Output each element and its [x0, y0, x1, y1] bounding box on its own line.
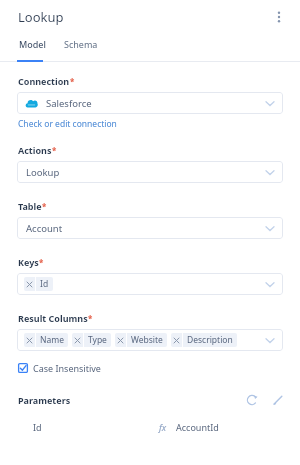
staticText: Id: [40, 278, 49, 290]
button[interactable]: More options: [266, 4, 292, 30]
staticText: *: [39, 257, 44, 268]
staticText: Model: [19, 38, 46, 50]
staticText: Description: [187, 334, 233, 346]
staticText: AccountId: [176, 421, 219, 433]
staticText: *: [70, 76, 75, 87]
button[interactable]: Account: [17, 217, 283, 239]
staticText: Result Columns: [18, 312, 88, 324]
button[interactable]: Model: [17, 34, 48, 54]
button[interactable]: Remove Website: [115, 333, 126, 347]
staticText: Salesforce: [46, 97, 92, 110]
button[interactable]: Salesforce: [17, 92, 283, 114]
button[interactable]: Remove Description: [171, 333, 182, 347]
staticText: Id: [33, 421, 42, 433]
button[interactable]: Schema: [62, 34, 100, 54]
staticText: Type: [88, 334, 107, 346]
button[interactable]: Remove Name: [17, 329, 283, 351]
staticText: Case Insensitive: [33, 362, 101, 374]
button[interactable]: Remove Id: [17, 273, 283, 295]
button[interactable]: Id: [0, 421, 300, 433]
button[interactable]: Case Insensitive: [18, 362, 101, 374]
staticText: Parameters: [18, 394, 71, 406]
staticText: *: [88, 313, 93, 324]
staticText: Keys: [18, 256, 39, 268]
staticText: Website: [131, 334, 163, 346]
button[interactable]: Remove Id: [24, 277, 35, 291]
staticText: Connection: [18, 75, 70, 87]
staticText: Name: [40, 334, 64, 346]
staticText: Actions: [18, 144, 52, 156]
staticText: *: [42, 201, 47, 212]
staticText: fx: [159, 421, 167, 433]
staticText: *: [52, 145, 57, 156]
staticText: Schema: [64, 38, 98, 50]
staticText: Check or edit connection: [18, 118, 117, 130]
button[interactable]: Check or edit connection: [18, 118, 117, 130]
staticText: Lookup: [18, 8, 64, 26]
staticText: Table: [18, 200, 42, 212]
button[interactable]: Remove Type: [72, 333, 83, 347]
button[interactable]: Lookup: [17, 161, 283, 183]
button[interactable]: Refresh: [242, 390, 262, 410]
staticText: Account: [26, 222, 63, 235]
button[interactable]: Edit: [268, 390, 288, 410]
staticText: Lookup: [26, 166, 60, 179]
button[interactable]: Remove Name: [24, 333, 35, 347]
